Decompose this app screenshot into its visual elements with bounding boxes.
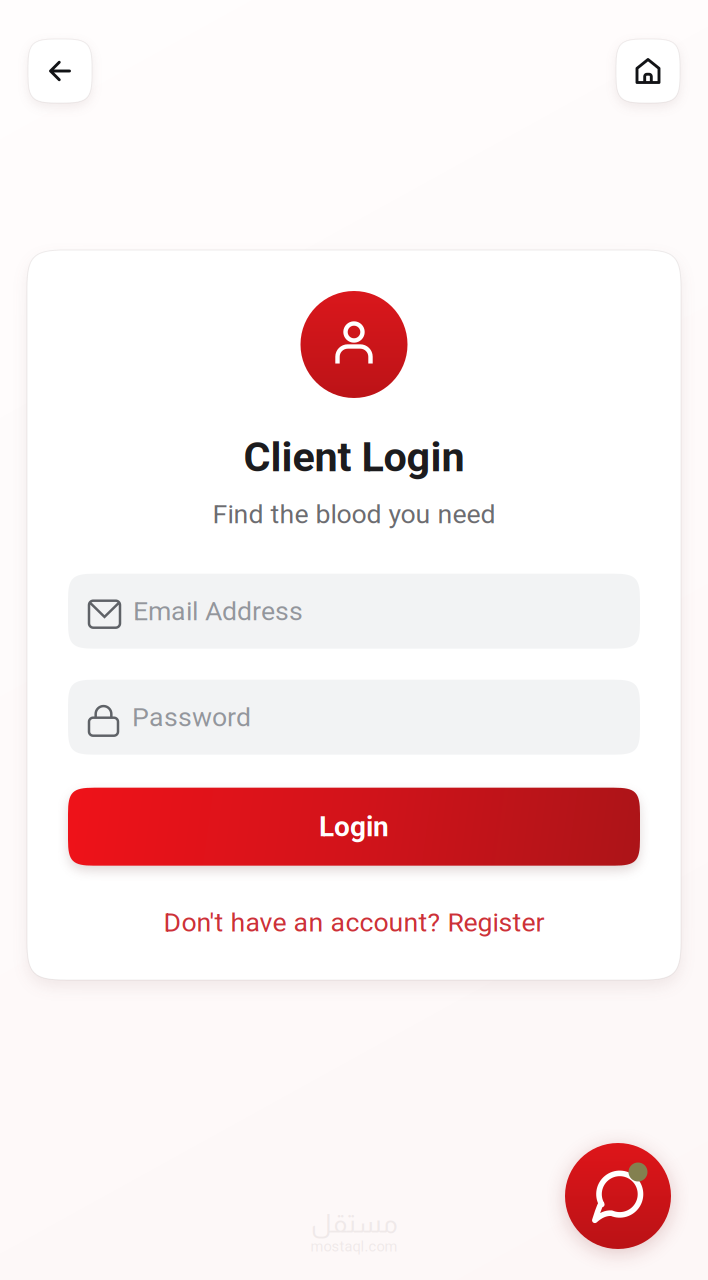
staticText: mostaql.com: [310, 1238, 397, 1255]
staticText: Don't have an account? Register: [163, 907, 544, 938]
button[interactable]: Don't have an account? Register: [143, 893, 564, 952]
button[interactable]: Login: [68, 788, 640, 866]
button[interactable]: Back: [28, 39, 92, 103]
button[interactable]: Home: [616, 39, 680, 103]
staticText: Email Address: [133, 596, 303, 627]
staticText: Find the blood you need: [212, 498, 495, 530]
staticText: Login: [319, 810, 389, 843]
staticText: Client Login: [243, 433, 464, 481]
staticText: مستقل: [310, 1209, 397, 1238]
button[interactable]: Chat support: [565, 1143, 671, 1249]
staticText: Password: [132, 702, 251, 733]
